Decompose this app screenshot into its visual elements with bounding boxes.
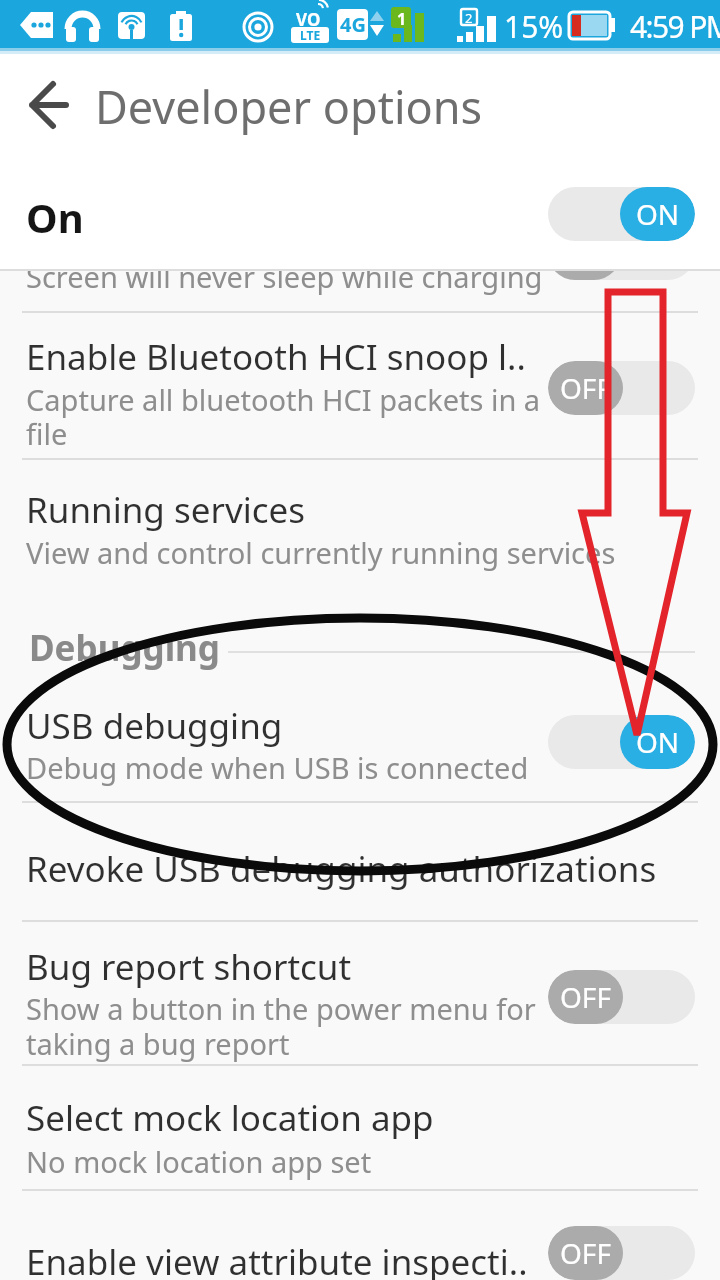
button[interactable]: OFF xyxy=(548,361,695,415)
staticText: LTE xyxy=(300,27,321,43)
staticText: No mock location app set xyxy=(26,1142,372,1181)
staticText: Enable Bluetooth HCI snoop l.. xyxy=(26,333,526,381)
staticText: OFF xyxy=(560,1234,611,1272)
button[interactable]: USB debugging xyxy=(0,680,720,801)
staticText: On xyxy=(26,190,84,244)
staticText: Developer options xyxy=(95,76,483,137)
staticText: Debug mode when USB is connected xyxy=(26,748,529,787)
button[interactable]: Enable Bluetooth HCI snoop l.. xyxy=(0,313,720,458)
button[interactable]: ON xyxy=(548,715,695,769)
staticText: OFF xyxy=(560,978,611,1016)
staticText: View and control currently running servi… xyxy=(26,533,616,572)
staticText: ON xyxy=(636,195,680,233)
staticText: 2 xyxy=(465,9,473,27)
staticText: Select mock location app xyxy=(26,1094,434,1142)
staticText: Revoke USB debugging authorizations xyxy=(26,845,657,893)
staticText: 4:59 PM xyxy=(630,6,720,47)
staticText: Debugging xyxy=(29,624,220,672)
staticText: ON xyxy=(636,723,680,761)
button[interactable]: Revoke USB debugging authorizations xyxy=(0,803,720,920)
button[interactable]: Select mock location app xyxy=(0,1066,720,1189)
staticText: USB debugging xyxy=(26,702,283,750)
staticText: 1 xyxy=(397,8,407,30)
staticText: VO xyxy=(296,8,321,31)
staticText: Screen will never sleep while charging xyxy=(26,271,543,296)
staticText: taking a bug report xyxy=(26,1024,290,1063)
button[interactable]: OFF xyxy=(548,970,695,1024)
button[interactable]: Running services xyxy=(0,460,720,585)
staticText: Running services xyxy=(26,486,306,534)
staticText: Bug report shortcut xyxy=(26,943,352,991)
staticText: Enable view attribute inspecti.. xyxy=(26,1238,528,1280)
staticText: Show a button in the power menu for xyxy=(26,989,536,1028)
staticText: 15% xyxy=(504,6,564,47)
button[interactable]: Enable view attribute inspecti.. xyxy=(0,1191,720,1280)
staticText: Capture all bluetooth HCI packets in a xyxy=(26,380,541,419)
button[interactable] xyxy=(20,80,80,130)
button[interactable]: ON xyxy=(548,187,695,241)
staticText: file xyxy=(26,414,68,453)
button[interactable]: On xyxy=(0,161,720,270)
button[interactable]: OFF xyxy=(548,1226,695,1280)
button[interactable]: Bug report shortcut xyxy=(0,922,720,1064)
staticText: OFF xyxy=(560,369,611,407)
staticText: 4G xyxy=(340,11,366,38)
